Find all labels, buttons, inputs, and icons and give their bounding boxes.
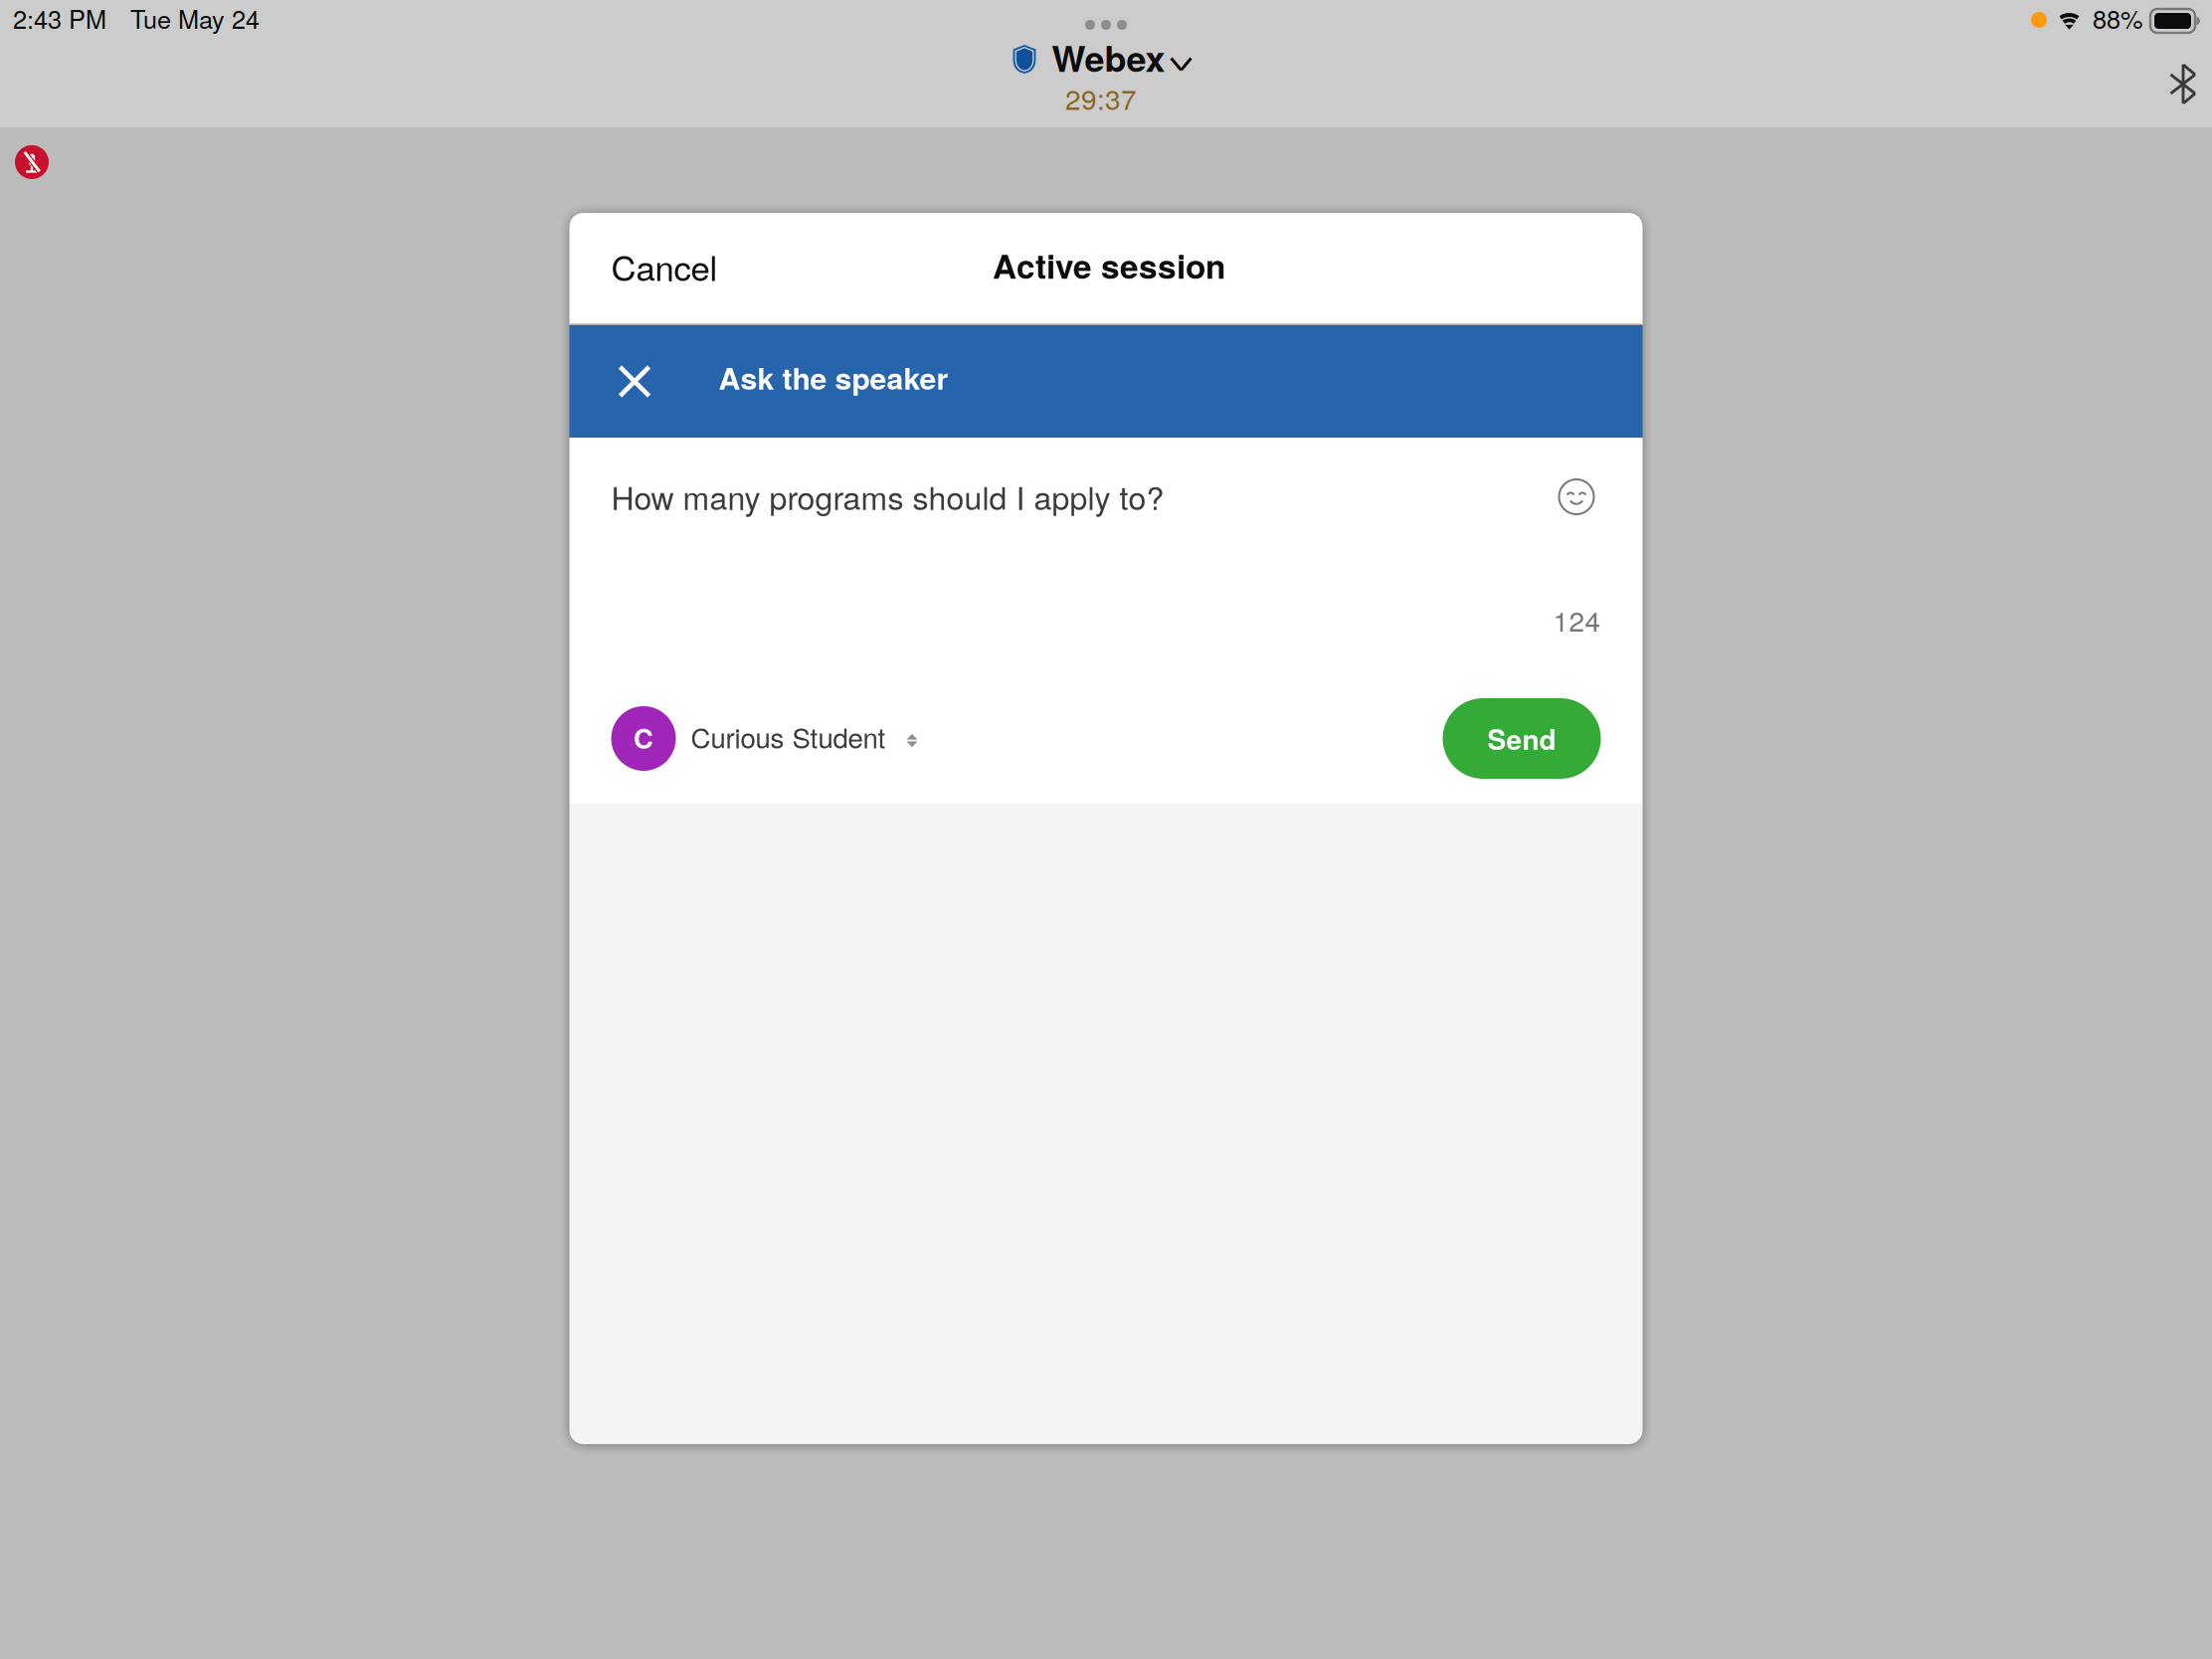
staticText: Ask the speaker	[719, 356, 948, 399]
staticText: Active session	[993, 241, 1225, 289]
button[interactable]: Send	[1443, 698, 1601, 779]
button[interactable]: Unmute microphone	[15, 145, 49, 179]
button[interactable]: Webex	[1013, 45, 1191, 74]
staticText: 88%	[2093, 0, 2143, 36]
staticText: Webex	[1052, 32, 1165, 83]
staticText: Cancel	[611, 241, 718, 291]
button[interactable]: Insert emoji	[1559, 479, 1594, 514]
button[interactable]: Cancel	[601, 234, 728, 304]
staticText: Tue May 24	[130, 0, 260, 36]
staticText: 2:43 PM	[13, 0, 106, 36]
staticText: Send	[1487, 719, 1556, 758]
staticText: Curious Student	[691, 717, 886, 756]
staticText: 124	[1553, 600, 1601, 639]
staticText: How many programs should I apply to?	[611, 473, 1164, 519]
staticText: 29:37	[1065, 78, 1137, 118]
staticText: C	[634, 718, 653, 757]
button[interactable]: C	[611, 706, 918, 771]
button[interactable]: Close	[607, 354, 662, 409]
